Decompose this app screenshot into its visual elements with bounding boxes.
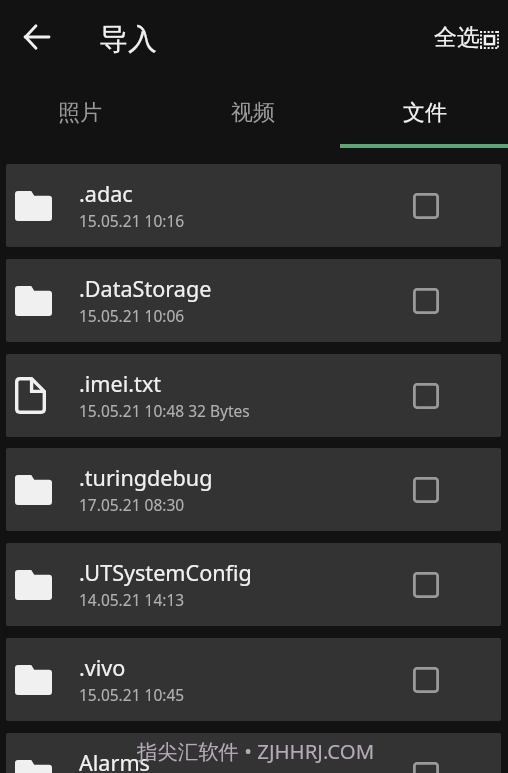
button[interactable]: Select .DataStorage [409, 284, 443, 318]
staticText: 文件 [403, 99, 447, 127]
staticText: Alarms [79, 748, 150, 773]
button[interactable]: .turingdebug [6, 448, 501, 531]
button[interactable]: .vivo [6, 638, 501, 721]
staticText: 14.05.21 14:13 [79, 589, 185, 610]
button[interactable]: Select .imei.txt [409, 379, 443, 413]
staticText: 17.05.21 08:30 [79, 494, 185, 515]
button[interactable]: Select .vivo [409, 663, 443, 697]
staticText: 全选 [434, 23, 480, 52]
staticText: .adac [79, 179, 133, 208]
button[interactable]: .DataStorage [6, 259, 501, 342]
staticText: .vivo [79, 653, 126, 682]
staticText: .UTSystemConfig [79, 558, 252, 587]
button[interactable]: Back [12, 13, 60, 61]
staticText: 15.05.21 10:06 [79, 305, 185, 326]
staticText: 15.05.21 10:16 [79, 210, 185, 231]
staticText: 导入 [99, 21, 157, 58]
staticText: .turingdebug [79, 463, 213, 492]
button[interactable]: 照片 [0, 78, 170, 147]
staticText: 指尖汇软件 • ZJHHRJ.COM [137, 737, 375, 765]
staticText: .imei.txt [79, 369, 162, 398]
button[interactable]: 文件 [340, 78, 508, 147]
button[interactable]: Select .adac [409, 189, 443, 223]
button[interactable]: .adac [6, 164, 501, 247]
staticText: .DataStorage [79, 274, 212, 303]
staticText: 15.05.21 10:45 [79, 684, 185, 705]
button[interactable]: Select .UTSystemConfig [409, 568, 443, 602]
button[interactable]: .UTSystemConfig [6, 543, 501, 626]
button[interactable]: 视频 [170, 78, 340, 147]
button[interactable]: Select all [424, 19, 508, 56]
staticText: 照片 [58, 99, 102, 127]
staticText: 15.05.21 10:48 32 Bytes [79, 400, 250, 421]
button[interactable]: Select Alarms [409, 758, 443, 773]
button[interactable]: .imei.txt [6, 354, 501, 437]
button[interactable]: Alarms [6, 733, 501, 773]
staticText: 视频 [231, 99, 275, 127]
button[interactable]: Select .turingdebug [409, 473, 443, 507]
